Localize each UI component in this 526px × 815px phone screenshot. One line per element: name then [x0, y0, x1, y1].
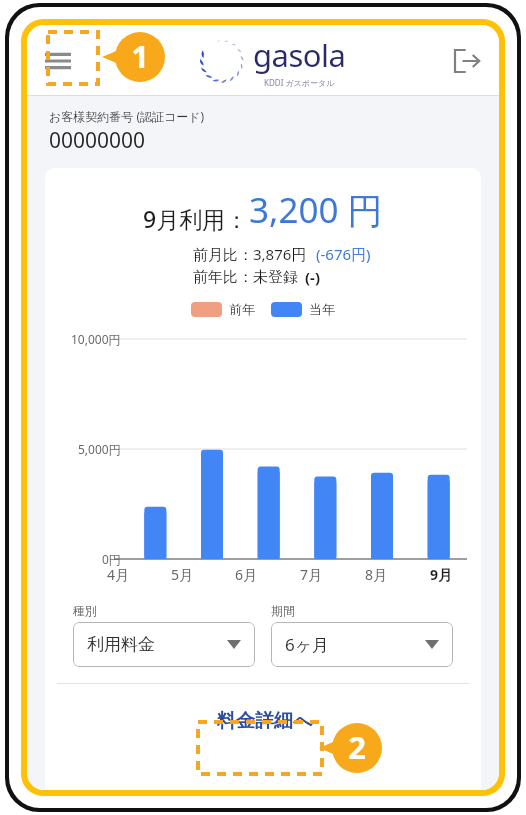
- staticText: 5月: [171, 565, 194, 584]
- staticText: お客様契約番号 (認証コード): [49, 108, 205, 124]
- staticText: 料金詳細へ: [217, 709, 313, 733]
- button[interactable]: 利用料金: [73, 622, 255, 667]
- staticText: 4月: [107, 565, 130, 584]
- staticText: 1: [115, 35, 165, 77]
- staticText: 前年: [229, 301, 255, 317]
- staticText: (-): [305, 267, 320, 287]
- staticText: 10,000円: [71, 331, 121, 347]
- staticText: 9月: [430, 565, 453, 584]
- staticText: 6ヶ月: [285, 633, 330, 656]
- button[interactable]: gasola: [197, 34, 346, 88]
- staticText: 00000000: [49, 126, 146, 155]
- staticText: 5,000円: [78, 441, 121, 457]
- staticText: 8月: [365, 565, 388, 584]
- staticText: 種別: [73, 603, 97, 618]
- staticText: 0円: [102, 551, 121, 567]
- staticText: 期間: [271, 603, 295, 618]
- staticText: 利用料金: [87, 634, 155, 655]
- staticText: gasola: [253, 34, 346, 76]
- staticText: 6月: [235, 565, 258, 584]
- staticText: KDDI ガスポータル: [264, 77, 335, 88]
- button[interactable]: Menu: [38, 41, 78, 81]
- staticText: (-676円): [316, 244, 371, 264]
- staticText: 前月比：3,876円: [193, 244, 307, 264]
- staticText: 9月利用：: [143, 203, 249, 234]
- staticText: 前年比：未登録: [193, 268, 298, 287]
- staticText: 当年: [309, 301, 335, 317]
- button[interactable]: 6ヶ月: [271, 622, 453, 667]
- staticText: 7月: [300, 565, 323, 584]
- button[interactable]: Logout: [447, 41, 487, 81]
- staticText: 3,200 円: [249, 186, 383, 234]
- staticText: 2: [332, 726, 382, 768]
- button[interactable]: 料金詳細へ: [203, 703, 327, 739]
